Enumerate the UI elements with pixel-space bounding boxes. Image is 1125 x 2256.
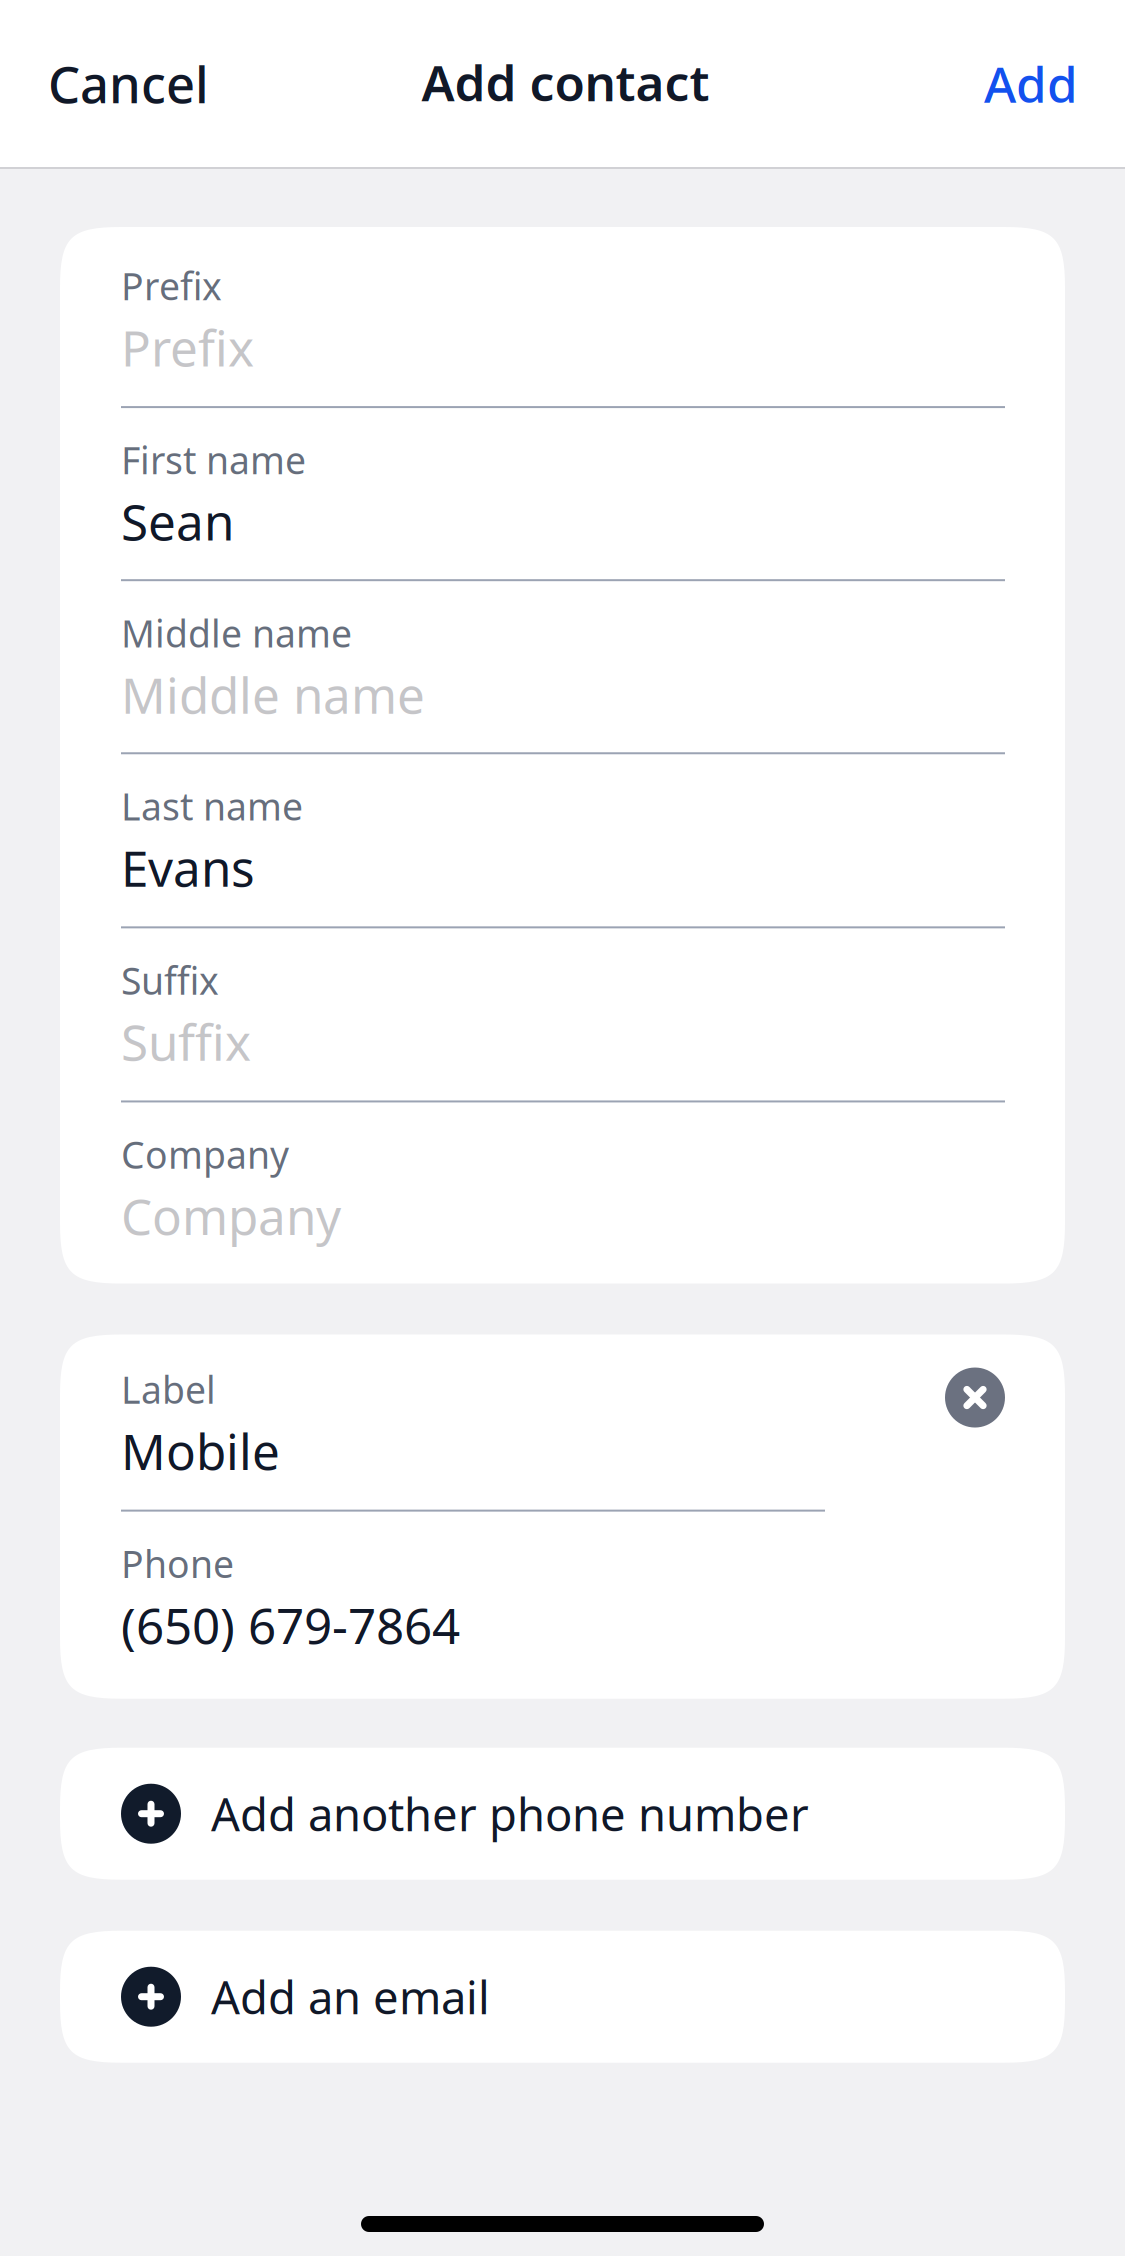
button[interactable]: Phone <box>121 1512 1065 1658</box>
staticText: Add <box>984 51 1078 116</box>
staticText: Suffix <box>121 1009 251 1074</box>
staticText: Cancel <box>48 50 209 117</box>
staticText: Middle name <box>121 662 425 727</box>
button[interactable]: Company <box>121 1102 1065 1248</box>
staticText: Label <box>121 1364 216 1414</box>
button[interactable]: Last name <box>121 754 1065 928</box>
button[interactable]: Prefix <box>121 234 1065 408</box>
staticText: Prefix <box>121 261 222 311</box>
staticText: Add an email <box>211 1967 490 2027</box>
staticText: First name <box>121 435 306 485</box>
button[interactable]: Add an email <box>60 1931 1065 2063</box>
button[interactable]: Label <box>121 1337 1065 1512</box>
staticText: Phone <box>121 1539 234 1588</box>
button[interactable]: Cancel <box>36 26 221 141</box>
button[interactable]: Add <box>972 27 1090 140</box>
staticText: Last name <box>121 781 303 831</box>
staticText: Prefix <box>121 315 254 380</box>
button[interactable]: Suffix <box>121 928 1065 1102</box>
staticText: Add another phone number <box>211 1784 809 1844</box>
button[interactable]: First name <box>121 408 1065 581</box>
staticText: Company <box>121 1129 289 1179</box>
staticText: Company <box>121 1183 341 1248</box>
staticText: (650) 679-7864 <box>121 1592 460 1658</box>
button[interactable]: Add another phone number <box>60 1748 1065 1880</box>
staticText: Suffix <box>121 955 219 1005</box>
staticText: Evans <box>121 835 255 900</box>
staticText: Middle name <box>121 608 352 658</box>
staticText: Sean <box>121 489 234 554</box>
button[interactable]: Remove phone number <box>945 1367 1005 1427</box>
button[interactable]: Middle name <box>121 581 1065 754</box>
staticText: Add contact <box>421 49 709 115</box>
staticText: Mobile <box>121 1418 280 1484</box>
